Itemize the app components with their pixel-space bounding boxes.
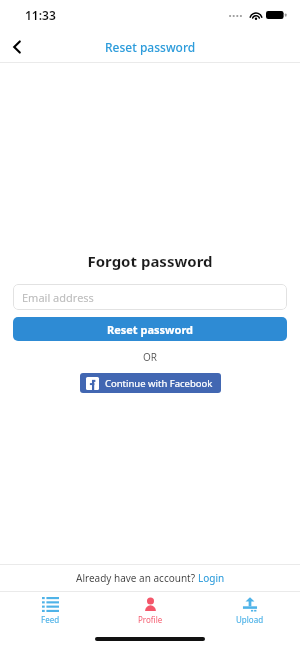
button[interactable]: Email address	[13, 284, 287, 310]
button[interactable]: Continue with Facebook	[80, 373, 221, 393]
staticText: Profile	[138, 614, 163, 625]
button[interactable]: Login	[198, 571, 225, 585]
button[interactable]: Back	[0, 30, 34, 63]
staticText: Already have an account?	[76, 571, 198, 585]
staticText: Reset password	[107, 322, 194, 337]
staticText: Upload	[236, 614, 264, 625]
staticText: Login	[198, 571, 225, 585]
staticText: Forgot password	[0, 251, 300, 271]
staticText: OR	[0, 350, 300, 364]
button[interactable]: Feed	[12, 595, 88, 627]
button[interactable]: Upload	[212, 595, 288, 627]
staticText: Continue with Facebook	[105, 377, 213, 390]
staticText: 11:33	[25, 7, 56, 23]
staticText: Email address	[22, 290, 94, 305]
staticText: Reset password	[105, 39, 196, 55]
button[interactable]: Profile	[112, 595, 188, 627]
button[interactable]: Reset password	[13, 317, 287, 341]
staticText: Feed	[41, 614, 60, 625]
